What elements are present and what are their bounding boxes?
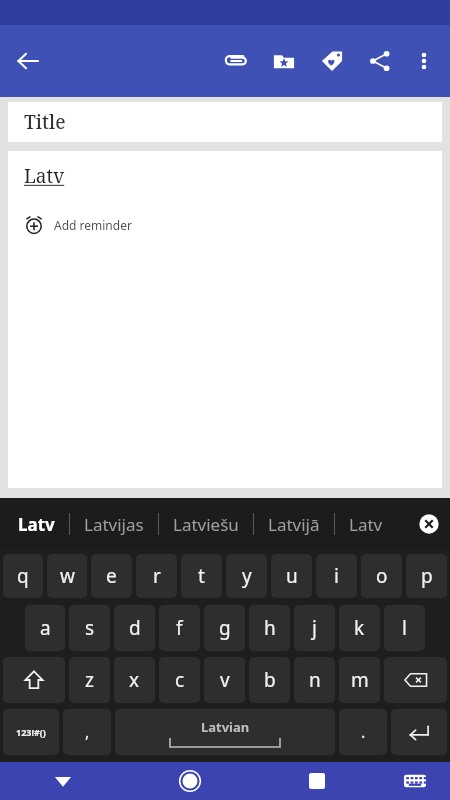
button[interactable]: Latv — [349, 513, 383, 536]
button[interactable]: Add reminder — [8, 211, 148, 239]
button[interactable]: Close suggestions — [414, 509, 444, 539]
button[interactable]: n — [294, 657, 335, 703]
staticText: f — [176, 615, 183, 641]
staticText: y — [242, 563, 252, 589]
button[interactable]: Latviešu — [173, 513, 239, 536]
button[interactable]: q — [3, 554, 43, 598]
staticText: n — [309, 667, 321, 693]
staticText: 123!#() — [16, 726, 46, 738]
staticText: a — [40, 615, 51, 641]
button[interactable]: Latvian — [115, 709, 335, 755]
button[interactable]: Recents — [253, 762, 380, 800]
staticText: p — [421, 563, 433, 589]
button[interactable]: c — [159, 657, 200, 703]
staticText: e — [106, 563, 117, 589]
button[interactable]: Title — [8, 102, 442, 142]
button[interactable]: g — [204, 605, 245, 651]
button[interactable]: Enter — [391, 709, 447, 755]
button[interactable]: Hide keyboard — [0, 762, 126, 800]
button[interactable]: r — [136, 554, 177, 598]
button[interactable]: k — [339, 605, 380, 651]
staticText: m — [351, 667, 369, 693]
staticText: Add reminder — [54, 217, 132, 233]
staticText: g — [219, 615, 231, 641]
button[interactable]: j — [294, 605, 335, 651]
button[interactable]: l — [384, 605, 425, 651]
button[interactable]: u — [271, 554, 312, 598]
button[interactable]: y — [226, 554, 267, 598]
staticText: o — [376, 563, 388, 589]
staticText: t — [198, 563, 205, 589]
button[interactable]: m — [339, 657, 380, 703]
staticText: c — [175, 667, 185, 693]
button[interactable]: Shift — [3, 657, 65, 703]
button[interactable]: s — [69, 605, 110, 651]
staticText: , — [85, 721, 90, 743]
button[interactable]: Attach — [212, 37, 260, 85]
button[interactable]: z — [69, 657, 110, 703]
staticText: x — [129, 667, 140, 693]
button[interactable]: d — [114, 605, 155, 651]
button[interactable]: t — [181, 554, 222, 598]
staticText: i — [334, 563, 339, 589]
staticText: Title — [24, 109, 66, 135]
button[interactable]: Labels — [308, 37, 356, 85]
button[interactable]: a — [25, 605, 65, 651]
staticText: j — [312, 615, 317, 641]
button[interactable]: Back — [0, 33, 56, 89]
staticText: q — [17, 563, 29, 589]
staticText: s — [85, 615, 95, 641]
button[interactable]: h — [249, 605, 290, 651]
staticText: u — [286, 563, 298, 589]
staticText: Latvian — [201, 718, 250, 736]
button[interactable]: w — [47, 554, 87, 598]
staticText: . — [361, 721, 366, 743]
button[interactable]: Latv — [18, 513, 55, 536]
staticText: k — [354, 615, 365, 641]
button[interactable]: e — [91, 554, 132, 598]
staticText: z — [85, 667, 94, 693]
button[interactable]: x — [114, 657, 155, 703]
staticText: r — [153, 563, 161, 589]
button[interactable]: Backspace — [384, 657, 447, 703]
staticText: b — [264, 667, 276, 693]
button[interactable]: , — [63, 709, 111, 755]
button[interactable]: . — [339, 709, 387, 755]
button[interactable]: Share — [356, 37, 404, 85]
button[interactable]: Home — [126, 762, 253, 800]
staticText: l — [402, 615, 407, 641]
button[interactable]: b — [249, 657, 290, 703]
staticText: v — [220, 667, 230, 693]
button[interactable]: v — [204, 657, 245, 703]
button[interactable]: f — [159, 605, 200, 651]
button[interactable]: Switch keyboard — [380, 762, 450, 800]
button[interactable]: Latv — [8, 151, 442, 488]
button[interactable]: p — [406, 554, 447, 598]
button[interactable]: Latvijā — [268, 513, 320, 536]
button[interactable]: Latvijas — [84, 513, 144, 536]
button[interactable]: 123!#() — [3, 709, 59, 755]
button[interactable]: Move to folder — [260, 37, 308, 85]
button[interactable]: o — [361, 554, 402, 598]
staticText: d — [129, 615, 141, 641]
staticText: h — [264, 615, 276, 641]
staticText: w — [60, 563, 75, 589]
button[interactable]: More options — [404, 41, 444, 81]
button[interactable]: i — [316, 554, 357, 598]
staticText: Latv — [24, 163, 65, 189]
